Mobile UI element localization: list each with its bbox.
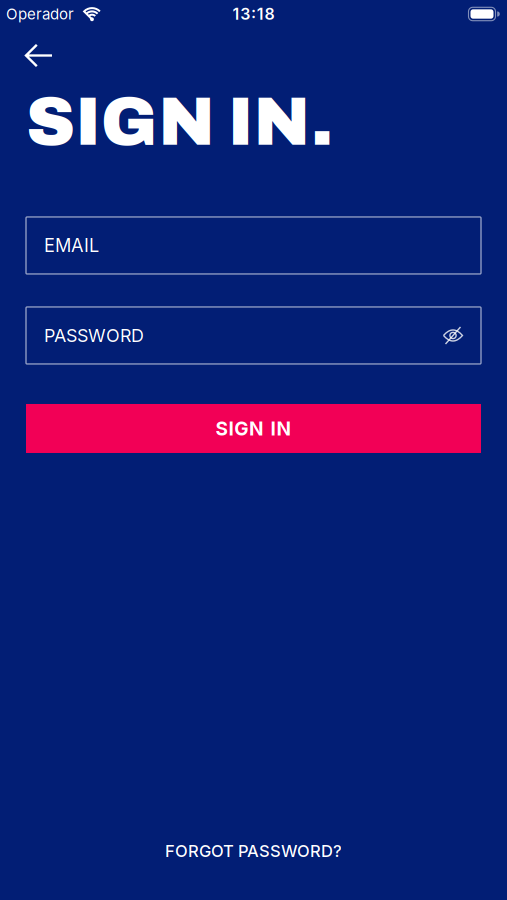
button[interactable]: SIGN IN	[26, 404, 481, 453]
button[interactable]: EMAIL	[26, 217, 481, 274]
staticText: Operador	[6, 5, 74, 23]
staticText: SIGN IN	[216, 417, 291, 440]
staticText: FORGOT PASSWORD?	[165, 841, 342, 861]
button[interactable]: PASSWORD	[26, 307, 481, 364]
staticText: 13:18	[232, 4, 275, 24]
staticText: EMAIL	[44, 234, 99, 256]
button[interactable]: FORGOT PASSWORD?	[165, 841, 342, 861]
staticText: PASSWORD	[44, 325, 144, 346]
button[interactable]	[25, 44, 53, 67]
staticText: SIGN IN.	[26, 85, 334, 159]
